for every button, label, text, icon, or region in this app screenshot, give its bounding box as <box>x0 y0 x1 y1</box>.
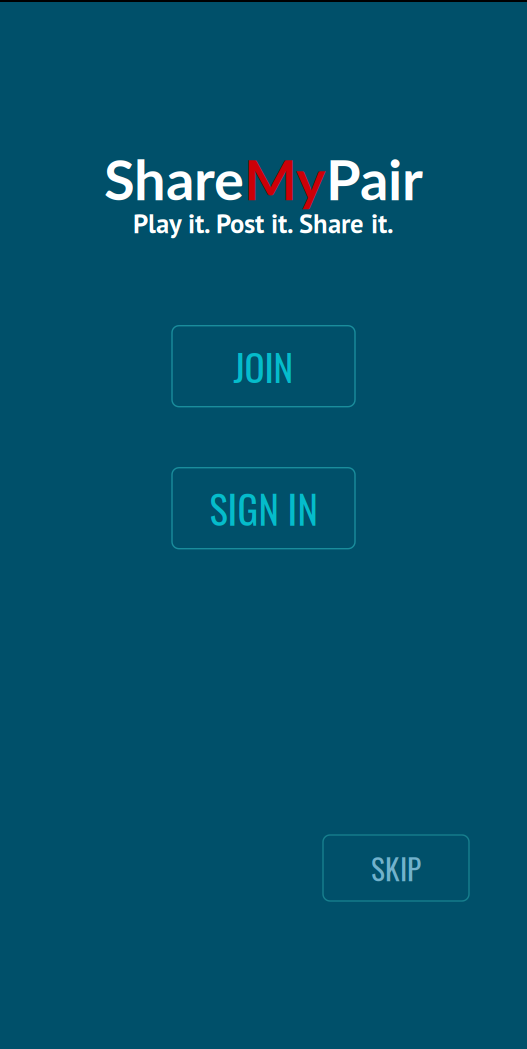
staticText: Pair <box>326 145 423 212</box>
staticText: SKIP <box>371 846 421 890</box>
staticText: SIGN IN <box>209 480 317 537</box>
button[interactable]: SIGN IN <box>172 468 355 549</box>
staticText: JOIN <box>233 338 293 394</box>
button[interactable]: SKIP <box>323 835 469 901</box>
staticText: My <box>244 145 326 212</box>
staticText: Share <box>104 145 244 212</box>
staticText: Play it. Post it. Share it. <box>133 206 394 241</box>
button[interactable]: JOIN <box>172 326 355 407</box>
